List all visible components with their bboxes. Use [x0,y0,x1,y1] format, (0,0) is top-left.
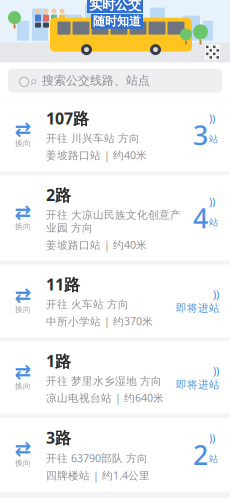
staticText: 姜坡路口站 | 约40米 [46,238,147,252]
staticText: 107路 [46,108,89,129]
staticText: )) [209,111,215,126]
button[interactable]: ○⌕ [8,69,222,93]
staticText: ⇄ [14,118,31,140]
staticText: 1路 [46,350,71,371]
staticText: ⇄ [14,360,31,383]
staticText: 开往 大凉山民族文化创意产业园 方向 [46,208,181,235]
staticText: ⇄ [14,201,31,223]
staticText: 开往 63790部队 方向 [46,451,148,465]
staticText: 姜坡路口站 | 约40米 [46,148,147,162]
button[interactable]: ⇄ [0,265,230,337]
staticText: 2 [193,437,208,472]
staticText: 四牌楼站 | 约1.4公里 [46,468,150,482]
staticText: 换向 [15,138,31,148]
staticText: 开往 梦里水乡湿地 方向 [46,374,162,388]
staticText: 开往 火车站 方向 [46,298,129,311]
staticText: 11路 [46,274,80,295]
staticText: 换向 [15,305,31,314]
staticText: ○⌕ [18,73,37,88]
staticText: 3 [193,117,208,153]
button[interactable]: ⇄ [0,341,230,414]
staticText: ⇄ [14,437,31,460]
staticText: 随时知道 [93,14,141,29]
staticText: 2路 [46,184,71,205]
button[interactable]: ⇄ [0,99,230,171]
staticText: 换向 [15,381,31,391]
staticText: )) [213,364,219,378]
staticText: )) [209,194,215,209]
staticText: 4 [193,200,208,236]
staticText: 搜索公交线路、站点 [42,73,150,88]
button[interactable]: ⇄ [0,418,230,491]
button[interactable]: ⇄ [0,175,230,261]
staticText: 实时公交 [89,0,141,13]
staticText: 凉山电视台站 | 约640米 [46,391,164,405]
staticText: 站 [209,133,218,145]
staticText: 3路 [46,427,71,448]
staticText: 开往 川兴车站 方向 [46,132,140,145]
staticText: 换向 [15,221,31,231]
staticText: 即将进站 [176,302,220,315]
staticText: 站 [209,453,218,465]
staticText: ⇄ [14,284,31,306]
staticText: 中所小学站 | 约370米 [46,314,153,328]
staticText: 换向 [15,458,31,468]
staticText: 站 [209,217,218,228]
staticText: 即将进站 [176,378,220,391]
staticText: )) [213,287,219,302]
staticText: )) [209,431,215,445]
